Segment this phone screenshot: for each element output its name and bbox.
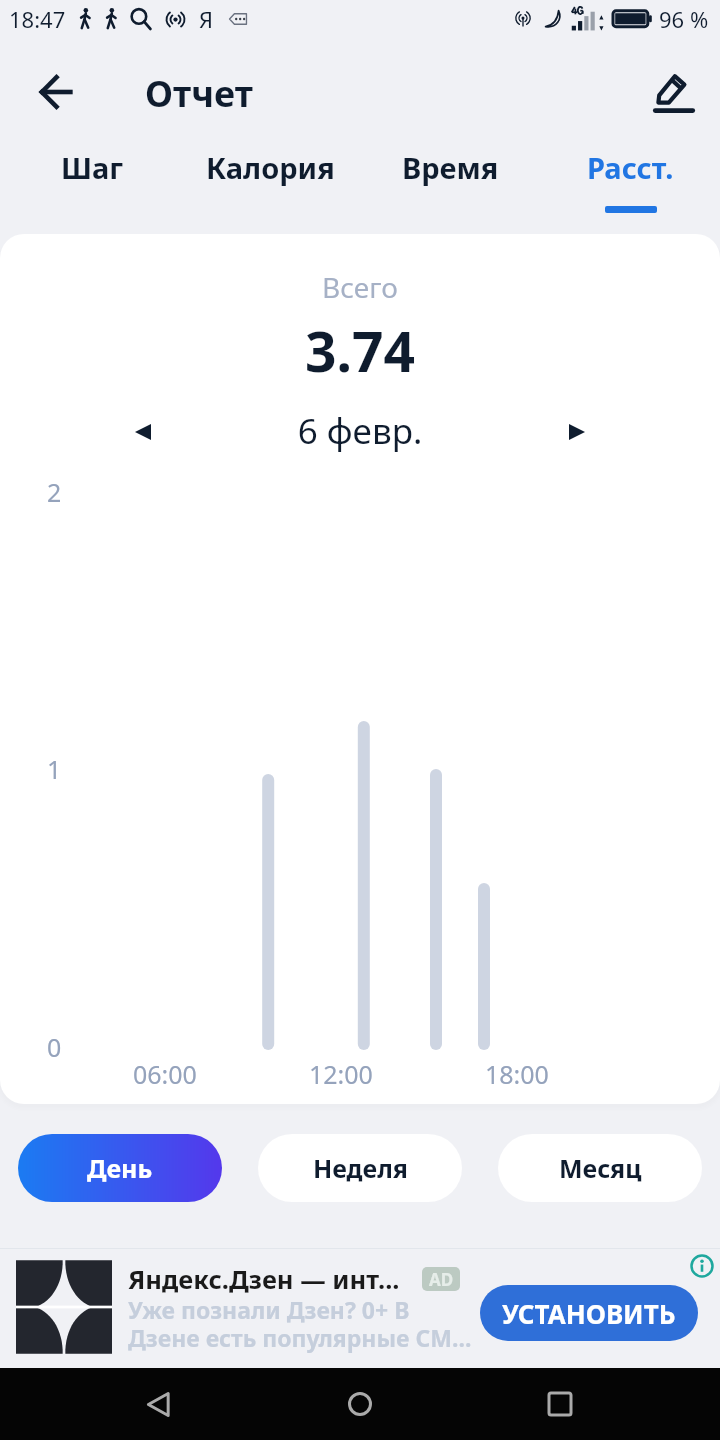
staticText: Всего — [0, 268, 720, 306]
button[interactable]: Back — [128, 1374, 188, 1434]
staticText: 12:00 — [309, 1057, 373, 1091]
staticText: 18:00 — [485, 1057, 549, 1091]
staticText: 1 — [47, 752, 62, 786]
button[interactable]: Ad info — [690, 1254, 714, 1278]
staticText: Расст. — [587, 148, 674, 187]
staticText: Месяц — [559, 1151, 642, 1185]
button[interactable]: Калория — [180, 134, 360, 224]
staticText: День — [87, 1151, 153, 1185]
button[interactable]: Recents — [530, 1374, 590, 1434]
staticText: AD — [429, 1268, 454, 1291]
staticText: Дзене есть популярные СМ... — [128, 1322, 472, 1353]
staticText: 3.74 — [0, 313, 720, 388]
button[interactable]: Previous day — [115, 404, 171, 460]
staticText: Время — [402, 148, 499, 187]
staticText: Калория — [206, 148, 335, 187]
button[interactable]: Шаг — [2, 134, 182, 224]
button[interactable]: Неделя — [258, 1134, 462, 1202]
staticText: 06:00 — [133, 1057, 197, 1091]
button[interactable]: Edit — [644, 63, 704, 123]
button[interactable]: Home — [330, 1374, 390, 1434]
staticText: 18:47 — [9, 4, 66, 34]
button[interactable]: Время — [360, 134, 540, 224]
staticText: 2 — [47, 475, 62, 509]
button[interactable]: Next day — [549, 404, 605, 460]
button[interactable]: Back — [28, 64, 84, 120]
staticText: Отчет — [145, 69, 253, 118]
staticText: Я — [199, 4, 214, 34]
button[interactable]: Месяц — [498, 1134, 702, 1202]
button[interactable]: УСТАНОВИТЬ — [480, 1285, 698, 1341]
staticText: 0 — [47, 1030, 62, 1064]
staticText: Шаг — [61, 148, 124, 187]
staticText: 96 % — [659, 4, 709, 34]
staticText: УСТАНОВИТЬ — [502, 1296, 676, 1331]
button[interactable]: День — [18, 1134, 222, 1202]
staticText: 6 февр. — [0, 407, 720, 455]
staticText: Неделя — [313, 1151, 408, 1185]
staticText: Яндекс.Дзен — инт... — [128, 1262, 400, 1297]
button[interactable]: Расст. — [540, 134, 720, 224]
staticText: Уже познали Дзен? 0+ В — [128, 1294, 410, 1325]
